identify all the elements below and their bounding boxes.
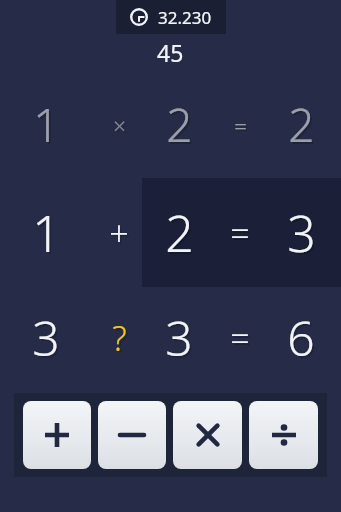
staticText: + xyxy=(109,210,129,256)
button[interactable]: Divide xyxy=(249,401,318,469)
staticText: 2 xyxy=(168,95,195,158)
staticText: ? xyxy=(114,317,129,363)
staticText: = xyxy=(230,210,250,256)
button[interactable]: Minus xyxy=(98,401,166,469)
staticText: 1 xyxy=(33,93,60,156)
staticText: 2 xyxy=(290,95,317,158)
staticText: 3 xyxy=(34,307,62,372)
staticText: 6 xyxy=(289,307,317,372)
staticText: 45 xyxy=(157,37,184,68)
staticText: 1 xyxy=(32,199,61,267)
staticText: × xyxy=(113,110,126,140)
staticText: = xyxy=(236,112,249,142)
staticText: 3 xyxy=(32,305,60,370)
staticText: 3 xyxy=(289,201,318,269)
staticText: 3 xyxy=(167,307,195,372)
staticText: × xyxy=(115,112,128,142)
staticText: = xyxy=(232,212,252,258)
staticText: = xyxy=(232,317,252,363)
staticText: 6 xyxy=(287,305,315,370)
button[interactable]: Multiply xyxy=(173,401,242,469)
button[interactable]: 1 xyxy=(0,178,341,287)
staticText: ? xyxy=(112,315,127,361)
staticText: = xyxy=(230,315,250,361)
staticText: 32.230 xyxy=(158,6,212,29)
staticText: 2 xyxy=(166,93,193,156)
staticText: 1 xyxy=(34,201,63,269)
staticText: 2 xyxy=(167,201,196,269)
staticText: 3 xyxy=(165,305,193,370)
staticText: 1 xyxy=(35,95,62,158)
staticText: 2 xyxy=(165,199,194,267)
button[interactable]: 32.230 xyxy=(116,0,226,34)
staticText: + xyxy=(111,212,131,258)
staticText: 2 xyxy=(288,93,315,156)
staticText: = xyxy=(234,110,247,140)
staticText: 3 xyxy=(287,199,316,267)
button[interactable]: Plus xyxy=(23,401,91,469)
